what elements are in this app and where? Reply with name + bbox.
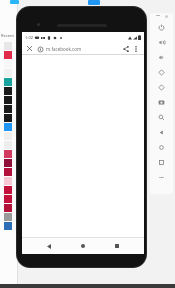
button[interactable]: Volume up bbox=[150, 35, 173, 50]
button[interactable]: m.facebook.com bbox=[46, 46, 121, 52]
button[interactable]: Site information bbox=[36, 45, 44, 53]
button[interactable]: More bbox=[150, 170, 173, 185]
button[interactable]: Rotate right bbox=[150, 80, 173, 95]
button[interactable]: Take screenshot bbox=[150, 95, 173, 110]
button[interactable]: Volume down bbox=[150, 50, 173, 65]
button[interactable]: Overview bbox=[110, 239, 124, 253]
button[interactable]: Home bbox=[150, 140, 173, 155]
button[interactable]: More options bbox=[131, 44, 141, 54]
button[interactable]: Back bbox=[150, 125, 173, 140]
button[interactable]: Rotate left bbox=[150, 65, 173, 80]
staticText: 1:02 bbox=[25, 35, 33, 40]
button[interactable]: Power bbox=[150, 20, 173, 35]
button[interactable]: Close bbox=[25, 44, 34, 53]
button[interactable]: Back bbox=[42, 239, 56, 253]
staticText: Recent bbox=[1, 33, 14, 38]
button[interactable]: Home bbox=[76, 239, 90, 253]
button[interactable]: Share bbox=[121, 44, 131, 54]
button[interactable]: Zoom bbox=[150, 110, 173, 125]
button[interactable]: Overview bbox=[150, 155, 173, 170]
